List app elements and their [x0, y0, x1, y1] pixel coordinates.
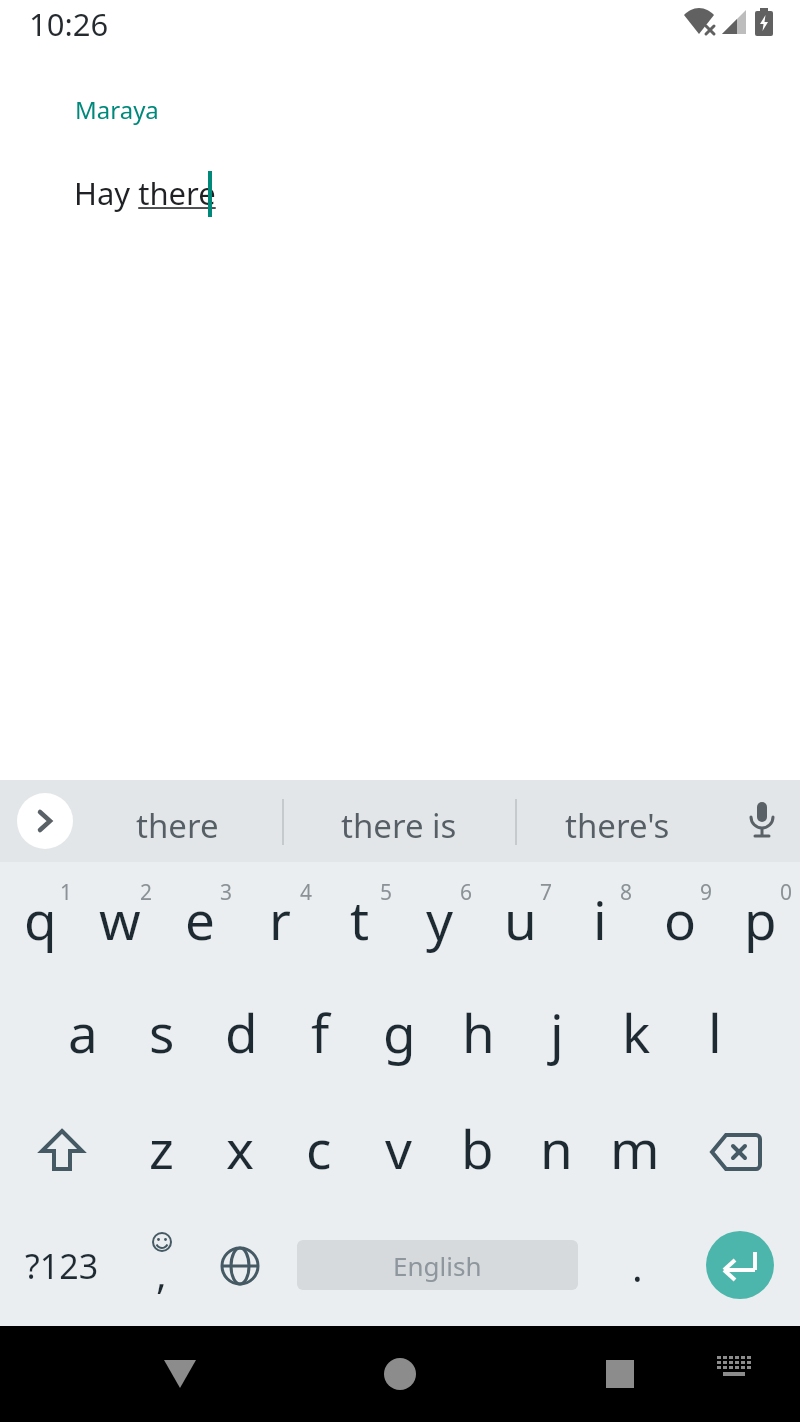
- staticText: 7: [540, 878, 553, 907]
- staticText: l: [708, 996, 722, 1068]
- staticText: r: [269, 883, 291, 955]
- button[interactable]: [140, 1334, 220, 1414]
- button[interactable]: a: [43, 974, 123, 1090]
- staticText: y: [426, 883, 454, 955]
- staticText: h: [462, 996, 495, 1068]
- button[interactable]: [200, 1218, 280, 1314]
- button[interactable]: z: [121, 1090, 201, 1206]
- button[interactable]: [580, 1334, 660, 1414]
- button[interactable]: there is: [282, 780, 515, 862]
- staticText: d: [225, 996, 258, 1068]
- staticText: 10:26: [29, 3, 109, 45]
- button[interactable]: j: [517, 974, 597, 1090]
- button[interactable]: [700, 1334, 770, 1404]
- button[interactable]: s: [122, 974, 202, 1090]
- button[interactable]: f: [280, 974, 360, 1090]
- button[interactable]: t: [320, 861, 400, 977]
- button[interactable]: l: [675, 974, 755, 1090]
- button[interactable]: [17, 793, 73, 849]
- staticText: w: [99, 883, 141, 955]
- staticText: 0: [780, 878, 793, 907]
- staticText: o: [664, 883, 697, 955]
- staticText: x: [226, 1112, 255, 1184]
- staticText: i: [593, 883, 607, 955]
- button[interactable]: Maraya: [75, 93, 159, 126]
- button[interactable]: [734, 793, 790, 849]
- staticText: there's: [565, 803, 670, 848]
- button[interactable]: e: [160, 861, 240, 977]
- staticText: c: [306, 1112, 332, 1184]
- button[interactable]: y: [400, 861, 480, 977]
- button[interactable]: x: [200, 1090, 280, 1206]
- staticText: p: [744, 883, 777, 955]
- button[interactable]: p: [720, 861, 800, 977]
- staticText: k: [622, 996, 651, 1068]
- button[interactable]: v: [358, 1090, 438, 1206]
- button[interactable]: [696, 1104, 776, 1200]
- staticText: 8: [620, 878, 633, 907]
- staticText: v: [385, 1112, 412, 1184]
- staticText: s: [149, 996, 175, 1068]
- button[interactable]: English: [297, 1240, 578, 1290]
- staticText: 6: [460, 878, 473, 907]
- button[interactable]: [706, 1231, 774, 1299]
- button[interactable]: i: [560, 861, 640, 977]
- button[interactable]: ?123: [22, 1218, 102, 1314]
- staticText: t: [350, 883, 370, 955]
- staticText: n: [540, 1112, 573, 1184]
- staticText: 4: [300, 878, 313, 907]
- button[interactable]: r: [240, 861, 320, 977]
- button[interactable]: b: [437, 1090, 517, 1206]
- button[interactable]: Hay there: [74, 172, 216, 214]
- button[interactable]: ,: [122, 1218, 202, 1314]
- button[interactable]: [22, 1104, 102, 1200]
- button[interactable]: n: [516, 1090, 596, 1206]
- staticText: j: [550, 996, 564, 1068]
- staticText: f: [311, 996, 330, 1068]
- staticText: a: [68, 996, 98, 1068]
- button[interactable]: k: [596, 974, 676, 1090]
- staticText: there is: [341, 803, 457, 848]
- staticText: q: [24, 883, 57, 955]
- button[interactable]: w: [80, 861, 160, 977]
- button[interactable]: [360, 1334, 440, 1414]
- button[interactable]: m: [595, 1090, 675, 1206]
- staticText: u: [504, 883, 537, 955]
- staticText: ?123: [25, 1243, 99, 1289]
- staticText: .: [632, 1239, 643, 1293]
- button[interactable]: c: [279, 1090, 359, 1206]
- button[interactable]: o: [640, 861, 720, 977]
- button[interactable]: g: [359, 974, 439, 1090]
- staticText: ,: [156, 1246, 167, 1300]
- button[interactable]: q: [0, 861, 80, 977]
- staticText: there: [136, 803, 219, 848]
- staticText: b: [461, 1112, 494, 1184]
- staticText: 9: [700, 878, 713, 907]
- button[interactable]: u: [480, 861, 560, 977]
- staticText: g: [383, 996, 416, 1068]
- button[interactable]: there's: [515, 780, 720, 862]
- button[interactable]: .: [597, 1218, 677, 1314]
- staticText: 3: [220, 878, 233, 907]
- staticText: English: [393, 1248, 482, 1283]
- button[interactable]: there: [73, 780, 282, 862]
- staticText: e: [185, 883, 215, 955]
- staticText: m: [610, 1112, 660, 1184]
- button[interactable]: h: [438, 974, 518, 1090]
- staticText: 5: [380, 878, 393, 907]
- staticText: 2: [140, 878, 153, 907]
- button[interactable]: d: [201, 974, 281, 1090]
- staticText: z: [149, 1112, 174, 1184]
- staticText: 1: [60, 878, 73, 907]
